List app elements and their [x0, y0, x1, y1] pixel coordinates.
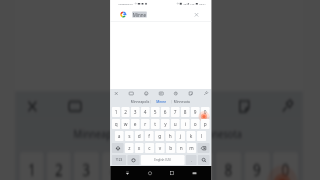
staticText: 8 [184, 109, 187, 115]
button[interactable]: h [165, 131, 175, 141]
button[interactable]: Hide keyboard [122, 167, 133, 178]
button[interactable]: Keyboard tool 0 [21, 93, 42, 118]
staticText: English (US) [154, 158, 171, 162]
button[interactable]: Keyboard tool 0 [112, 89, 120, 97]
button[interactable]: 1 [112, 107, 120, 117]
staticText: 4g [183, 2, 186, 5]
button[interactable]: Keyboard tool 4 [190, 93, 212, 118]
staticText: 3 [134, 109, 137, 115]
button[interactable]: 4 [102, 152, 128, 180]
button[interactable]: r [141, 119, 150, 129]
button[interactable]: 0 [273, 152, 298, 180]
button[interactable]: 2 [47, 152, 71, 180]
button[interactable]: e [131, 119, 140, 129]
button[interactable]: 8 [216, 152, 241, 180]
button[interactable]: Keyboard tool 2 [142, 89, 150, 97]
staticText: o [194, 121, 197, 127]
button[interactable]: c [145, 143, 154, 153]
button[interactable]: Keyboard tool 3 [149, 93, 170, 118]
staticText: p [204, 121, 207, 127]
button[interactable]: Minne [130, 118, 189, 148]
button[interactable]: Keyboard tool 5 [187, 89, 194, 97]
button[interactable]: t [151, 119, 160, 129]
button[interactable]: 6 [161, 107, 170, 117]
button[interactable]: 5 [130, 152, 156, 180]
staticText: 6 [167, 159, 176, 180]
staticText: 3 [82, 159, 91, 180]
button[interactable]: Search [198, 155, 210, 165]
button[interactable]: 4 [141, 107, 150, 117]
button[interactable]: Clear search [193, 11, 199, 17]
staticText: s [128, 133, 131, 139]
button[interactable]: y [161, 119, 170, 129]
button[interactable]: u [171, 119, 180, 129]
button[interactable]: Keyboard tool 2 [106, 93, 128, 118]
button[interactable]: k [186, 131, 196, 141]
staticText: ?123 [116, 158, 122, 162]
staticText: Minne [146, 127, 175, 142]
button[interactable]: 1 [19, 152, 44, 180]
button[interactable]: Minneapolis [130, 97, 150, 106]
button[interactable]: Home [144, 167, 155, 178]
button[interactable]: Minnesota [172, 97, 192, 106]
staticText: w [124, 121, 128, 127]
staticText: 7 [174, 109, 177, 115]
button[interactable]: 0 [201, 107, 210, 117]
button[interactable]: Keyboard tool 5 [233, 93, 254, 118]
button[interactable]: Keyboard tool 4 [172, 89, 179, 97]
button[interactable]: 9 [191, 107, 200, 117]
button[interactable]: Minnesota [190, 118, 249, 148]
button[interactable]: Minne [151, 97, 171, 106]
staticText: 0 [204, 109, 207, 115]
staticText: Minne [133, 11, 146, 17]
staticText: j [180, 133, 181, 139]
button[interactable]: 3 [131, 107, 140, 117]
button[interactable]: 5 [151, 107, 160, 117]
button[interactable]: g [155, 131, 164, 141]
button[interactable]: Switch keyboard [189, 167, 200, 178]
button[interactable]: n [176, 143, 186, 153]
button[interactable]: 7 [187, 152, 213, 180]
staticText: 09:41 [199, 2, 206, 5]
button[interactable]: . [186, 155, 197, 165]
button[interactable]: f [145, 131, 154, 141]
button[interactable]: i [181, 119, 190, 129]
button[interactable]: m [187, 143, 196, 153]
button[interactable]: q [112, 119, 120, 129]
button[interactable]: ?123 [112, 155, 126, 165]
staticText: 7 [196, 159, 204, 180]
button[interactable]: 8 [181, 107, 190, 117]
staticText: 1 [28, 159, 37, 180]
button[interactable]: x [135, 143, 144, 153]
button[interactable]: l [197, 131, 206, 141]
button[interactable]: 3 [74, 152, 99, 180]
button[interactable]: 9 [244, 152, 270, 180]
button[interactable]: Keyboard tool 1 [127, 89, 135, 97]
button[interactable]: Emoji [127, 155, 140, 165]
button[interactable]: w [121, 119, 130, 129]
button[interactable]: p [201, 119, 210, 129]
button[interactable]: Keyboard tool 6 [276, 93, 297, 118]
button[interactable]: d [135, 131, 144, 141]
staticText: x [138, 145, 141, 151]
button[interactable]: b [166, 143, 175, 153]
button[interactable]: s [125, 131, 134, 141]
button[interactable]: Minneapolis [72, 118, 129, 148]
button[interactable]: o [191, 119, 200, 129]
staticText: . [191, 157, 192, 163]
button[interactable]: Shift [112, 143, 124, 153]
button[interactable]: 2 [121, 107, 130, 117]
button[interactable]: j [176, 131, 185, 141]
button[interactable]: Keyboard tool 3 [157, 89, 165, 97]
button[interactable]: z [125, 143, 134, 153]
button[interactable]: 6 [159, 152, 185, 180]
button[interactable]: a [115, 131, 124, 141]
staticText: 8 [224, 159, 233, 180]
button[interactable]: Recents [166, 167, 177, 178]
button[interactable]: Keyboard tool 6 [202, 89, 209, 97]
button[interactable]: Keyboard tool 1 [64, 93, 85, 118]
button[interactable]: 7 [171, 107, 180, 117]
button[interactable]: Backspace [197, 143, 210, 153]
button[interactable]: v [155, 143, 165, 153]
button[interactable]: English (US) [141, 155, 185, 165]
